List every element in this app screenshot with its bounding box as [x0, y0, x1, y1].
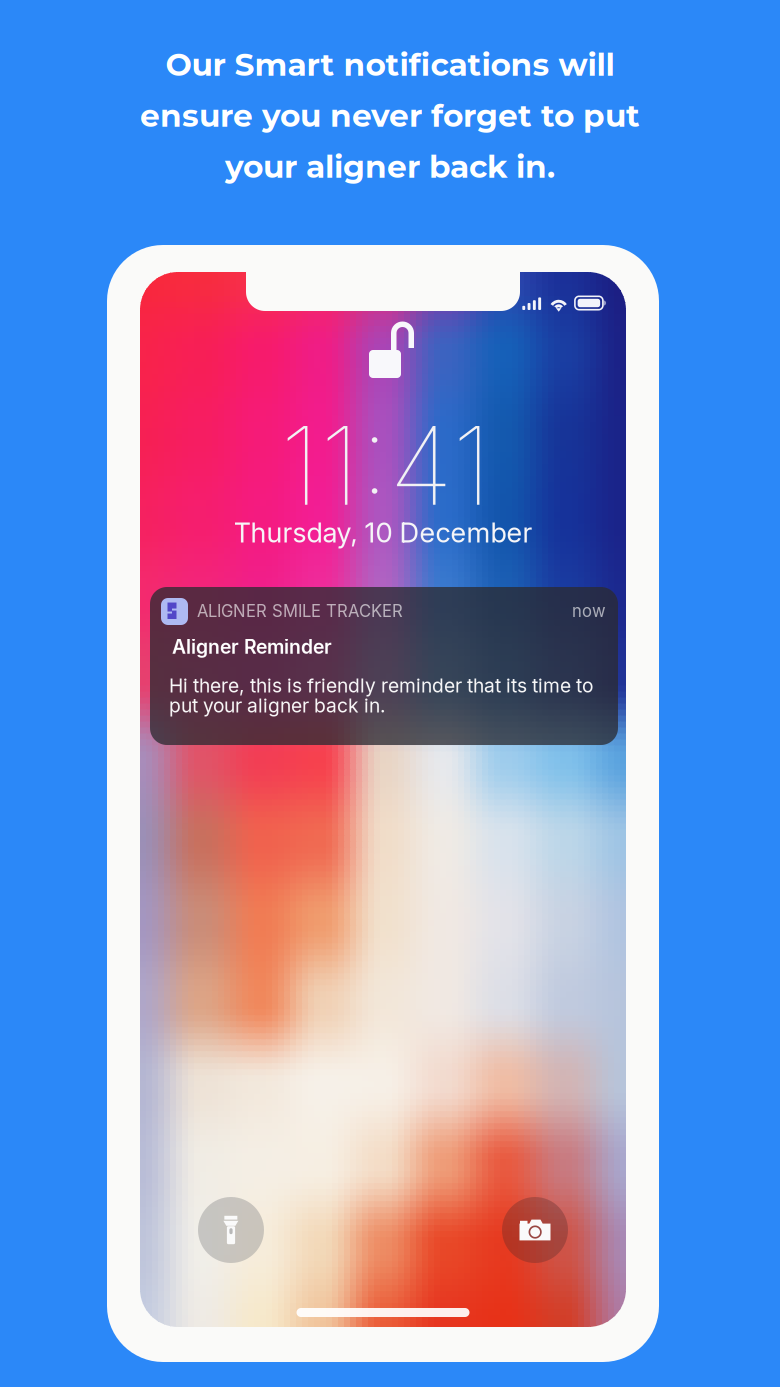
staticText: now	[572, 601, 606, 621]
staticText: Hi there, this is friendly reminder that…	[169, 674, 593, 697]
staticText: ALIGNER SMILE TRACKER	[197, 601, 403, 621]
staticText: Aligner Reminder	[172, 635, 332, 658]
staticText: Thursday, 10 December	[233, 516, 532, 549]
staticText: Our Smart notifications will	[165, 45, 614, 83]
button[interactable]: Camera	[502, 1197, 568, 1263]
button[interactable]: ALIGNER SMILE TRACKER	[150, 587, 618, 745]
staticText: ensure you never forget to put	[140, 96, 640, 134]
staticText: your aligner back in.	[225, 147, 555, 185]
button[interactable]: Flashlight	[198, 1197, 264, 1263]
staticText: put your aligner back in.	[169, 694, 386, 717]
staticText: 11:41	[280, 400, 492, 531]
